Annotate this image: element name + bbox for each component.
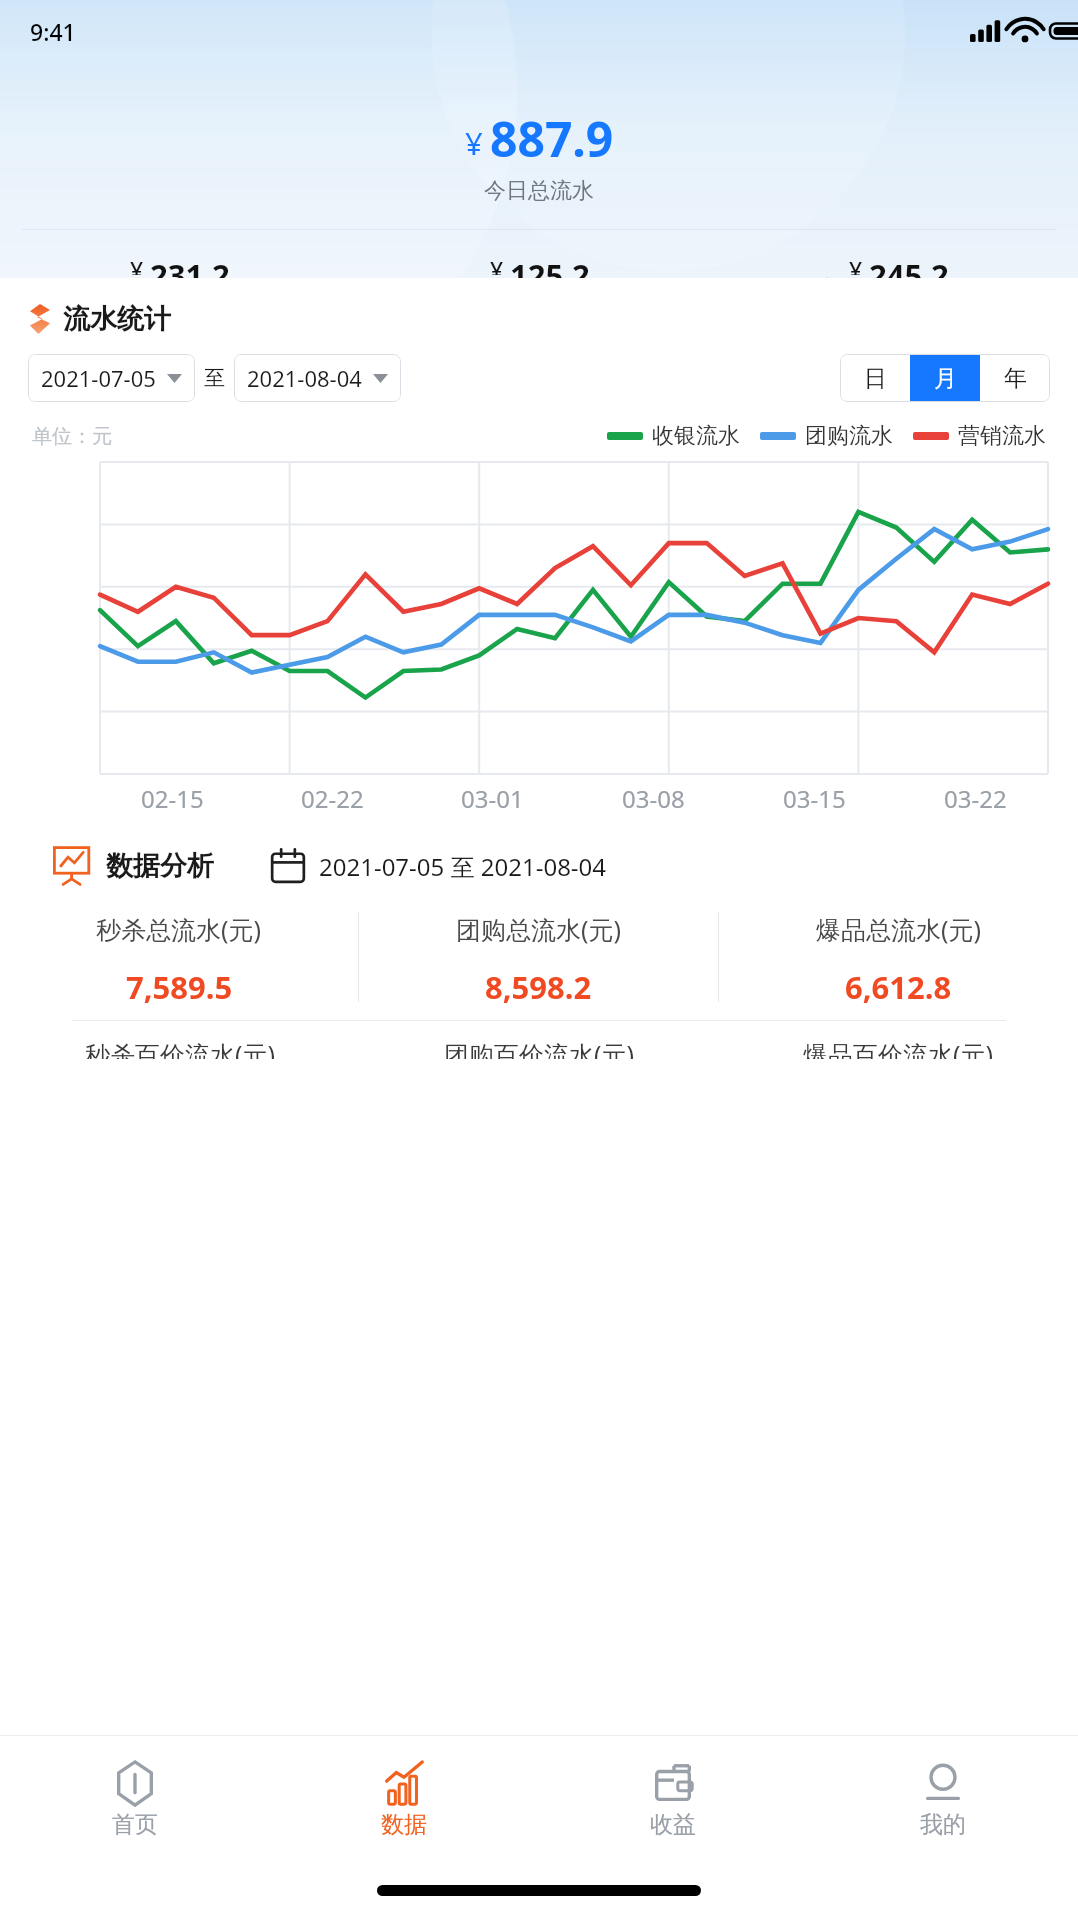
- staticText: 8,598.2: [485, 966, 592, 1008]
- staticText: 日: [864, 364, 887, 393]
- staticText: 245.2: [869, 254, 949, 278]
- button[interactable]: 团购总流水(元): [359, 912, 718, 1008]
- staticText: 数据: [381, 1810, 427, 1839]
- button[interactable]: 秒杀总流水(元): [0, 912, 358, 1008]
- staticText: 首页: [112, 1810, 158, 1839]
- staticText: 流水统计: [63, 302, 171, 336]
- staticText: 02-22: [301, 782, 364, 815]
- staticText: 887.9: [490, 106, 614, 171]
- staticText: 团购流水: [805, 422, 893, 450]
- staticText: 单位：元: [32, 424, 112, 449]
- button[interactable]: 我的: [808, 1736, 1078, 1862]
- button[interactable]: 首页: [0, 1736, 269, 1862]
- button[interactable]: 日: [840, 354, 910, 402]
- button[interactable]: ¥: [0, 254, 360, 278]
- staticText: 2021-07-05 至 2021-08-04: [319, 850, 607, 883]
- staticText: 6,612.8: [845, 966, 952, 1008]
- button[interactable]: 爆品总流水(元): [719, 912, 1078, 1008]
- staticText: 秒杀总流水(元): [96, 912, 262, 946]
- staticText: 团购百价流水(元): [444, 1037, 635, 1059]
- staticText: 125.2: [510, 254, 590, 278]
- staticText: 爆品百价流水(元): [803, 1037, 994, 1059]
- button[interactable]: 2021-07-05: [28, 354, 195, 402]
- staticText: 数据分析: [106, 849, 214, 883]
- staticText: 03-01: [461, 782, 524, 815]
- button[interactable]: ¥: [360, 254, 719, 278]
- staticText: ¥: [130, 254, 144, 275]
- staticText: ¥: [490, 254, 504, 275]
- staticText: 收银流水: [652, 422, 740, 450]
- button[interactable]: 数据: [269, 1736, 538, 1862]
- staticText: ¥: [849, 254, 863, 275]
- staticText: 秒杀百价流水(元): [85, 1037, 276, 1059]
- staticText: 7,589.5: [126, 966, 233, 1008]
- button[interactable]: 年: [980, 354, 1050, 402]
- staticText: 9:41: [30, 16, 76, 47]
- button[interactable]: 2021-08-04: [234, 354, 401, 402]
- staticText: ¥: [465, 122, 483, 164]
- staticText: 月: [934, 364, 957, 393]
- staticText: 2021-08-04: [247, 363, 362, 393]
- staticText: 03-08: [622, 782, 685, 815]
- staticText: 02-15: [141, 782, 204, 815]
- staticText: 231.2: [150, 254, 230, 278]
- staticText: 2021-07-05: [41, 363, 156, 393]
- button[interactable]: 月: [910, 354, 980, 402]
- staticText: 我的: [920, 1810, 966, 1839]
- button[interactable]: 收益: [538, 1736, 808, 1862]
- staticText: 至: [204, 365, 225, 391]
- staticText: 爆品总流水(元): [816, 912, 982, 946]
- staticText: 团购总流水(元): [456, 912, 622, 946]
- staticText: 今日总流水: [484, 177, 594, 205]
- staticText: 03-22: [944, 782, 1007, 815]
- staticText: 收益: [650, 1810, 696, 1839]
- staticText: 03-15: [783, 782, 846, 815]
- staticText: 营销流水: [958, 422, 1046, 450]
- button[interactable]: ¥: [719, 254, 1078, 278]
- staticText: 年: [1004, 364, 1027, 393]
